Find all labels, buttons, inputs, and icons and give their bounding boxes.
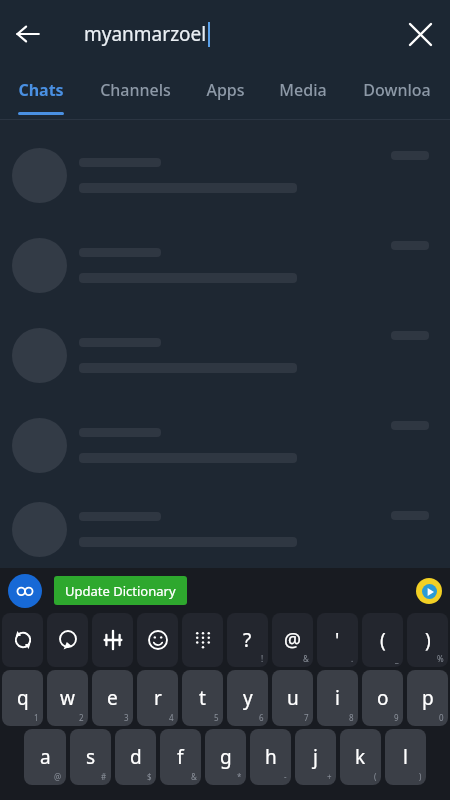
button[interactable]: Stickers — [47, 613, 88, 667]
button[interactable]: Downloa — [344, 68, 450, 120]
staticText: u — [287, 685, 299, 711]
button[interactable]: ) — [407, 613, 448, 667]
staticText: Downloa — [363, 79, 431, 101]
button[interactable]: f — [160, 729, 201, 785]
staticText: $ — [147, 771, 152, 782]
staticText: w — [60, 685, 75, 711]
staticText: 4 — [169, 712, 174, 723]
staticText: 5 — [214, 712, 219, 723]
button[interactable]: s — [70, 729, 111, 785]
button[interactable]: y — [227, 670, 268, 726]
button[interactable]: Refresh — [2, 613, 43, 667]
button[interactable]: i — [317, 670, 358, 726]
button[interactable]: p — [407, 670, 448, 726]
staticText: 9 — [394, 712, 399, 723]
staticText: o — [377, 685, 389, 711]
staticText: a — [40, 744, 51, 770]
staticText: 6 — [259, 712, 264, 723]
button[interactable] — [0, 130, 450, 220]
staticText: l — [403, 744, 408, 770]
button[interactable]: Media — [262, 68, 344, 120]
button[interactable]: r — [137, 670, 178, 726]
staticText: r — [154, 685, 162, 711]
staticText: _ — [395, 653, 399, 664]
staticText: ( — [380, 627, 386, 653]
button[interactable]: ? — [227, 613, 268, 667]
button[interactable]: @ — [272, 613, 313, 667]
staticText: & — [191, 771, 197, 782]
staticText: & — [303, 653, 309, 664]
staticText: 0 — [439, 712, 444, 723]
button[interactable]: u — [272, 670, 313, 726]
button[interactable]: j — [295, 729, 336, 785]
staticText: # — [101, 771, 107, 782]
button[interactable]: h — [250, 729, 291, 785]
button[interactable]: q — [2, 670, 43, 726]
button[interactable]: Settings slider — [92, 613, 133, 667]
button[interactable]: g — [205, 729, 246, 785]
button[interactable]: Clear search — [390, 4, 450, 64]
staticText: 8 — [349, 712, 354, 723]
staticText: Update Dictionary — [65, 582, 176, 600]
staticText: ' — [335, 627, 340, 653]
staticText: f — [177, 744, 184, 770]
button[interactable]: Dial pad — [182, 613, 223, 667]
button[interactable]: d — [115, 729, 156, 785]
button[interactable]: Voice input — [416, 578, 442, 604]
staticText: * — [237, 771, 242, 782]
staticText: 7 — [304, 712, 309, 723]
button[interactable] — [0, 400, 450, 490]
staticText: Apps — [206, 79, 245, 101]
button[interactable]: o — [362, 670, 403, 726]
staticText: q — [17, 685, 29, 711]
staticText: 1 — [34, 712, 39, 723]
button[interactable]: Emoji — [137, 613, 178, 667]
staticText: @ — [54, 771, 62, 782]
staticText: s — [86, 744, 96, 770]
button[interactable]: ( — [362, 613, 403, 667]
staticText: e — [107, 685, 118, 711]
staticText: . — [351, 653, 354, 664]
staticText: t — [199, 685, 206, 711]
staticText: ! — [261, 653, 264, 664]
button[interactable] — [0, 490, 450, 568]
button[interactable]: Keyboard settings — [8, 574, 42, 608]
staticText: d — [130, 744, 142, 770]
button[interactable]: ' — [317, 613, 358, 667]
staticText: Channels — [100, 79, 171, 101]
staticText: % — [437, 653, 444, 664]
staticText: @ — [284, 627, 302, 653]
staticText: p — [422, 685, 434, 711]
button[interactable]: e — [92, 670, 133, 726]
staticText: ( — [374, 771, 377, 782]
button[interactable] — [0, 310, 450, 400]
button[interactable]: Apps — [188, 68, 262, 120]
staticText: ? — [243, 627, 252, 653]
button[interactable]: w — [47, 670, 88, 726]
button[interactable]: a — [24, 729, 66, 785]
staticText: myanmarzoel — [84, 21, 207, 47]
staticText: k — [355, 744, 366, 770]
staticText: h — [265, 744, 277, 770]
button[interactable]: Back — [0, 6, 56, 62]
staticText: j — [313, 744, 318, 770]
staticText: 3 — [124, 712, 129, 723]
staticText: ) — [419, 771, 422, 782]
button[interactable]: k — [340, 729, 381, 785]
button[interactable]: Chats — [0, 68, 82, 120]
staticText: Chats — [18, 79, 64, 101]
button[interactable]: Update Dictionary — [54, 576, 187, 605]
button[interactable]: l — [385, 729, 426, 785]
staticText: + — [327, 771, 332, 782]
button[interactable] — [0, 220, 450, 310]
staticText: - — [284, 771, 287, 782]
button[interactable]: t — [182, 670, 223, 726]
staticText: y — [243, 685, 253, 711]
staticText: Media — [279, 79, 327, 101]
staticText: i — [335, 685, 340, 711]
button[interactable]: Channels — [82, 68, 188, 120]
staticText: ) — [425, 627, 431, 653]
staticText: g — [220, 744, 232, 770]
staticText: 2 — [79, 712, 84, 723]
